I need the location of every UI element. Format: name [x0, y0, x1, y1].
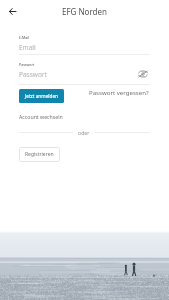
staticText: oder: [78, 129, 90, 136]
staticText: Passwort vergessen?: [89, 88, 149, 96]
staticText: Passwort: [19, 62, 35, 67]
staticText: Passwort: [19, 70, 47, 79]
staticText: Account wechseln: [19, 113, 63, 120]
button[interactable]: Back: [4, 3, 21, 20]
button[interactable]: Account wechseln: [19, 110, 63, 122]
staticText: Jetzt anmelden: [25, 93, 58, 99]
staticText: Email: [19, 43, 36, 52]
button[interactable]: Passwort vergessen?: [86, 84, 149, 100]
staticText: E-Mail: [19, 35, 30, 40]
button[interactable]: Show password: [136, 67, 150, 81]
staticText: Registrieren: [25, 151, 54, 158]
button[interactable]: Registrieren: [19, 147, 60, 162]
staticText: EFG Norden: [62, 6, 107, 17]
button[interactable]: Jetzt anmelden: [19, 89, 64, 103]
